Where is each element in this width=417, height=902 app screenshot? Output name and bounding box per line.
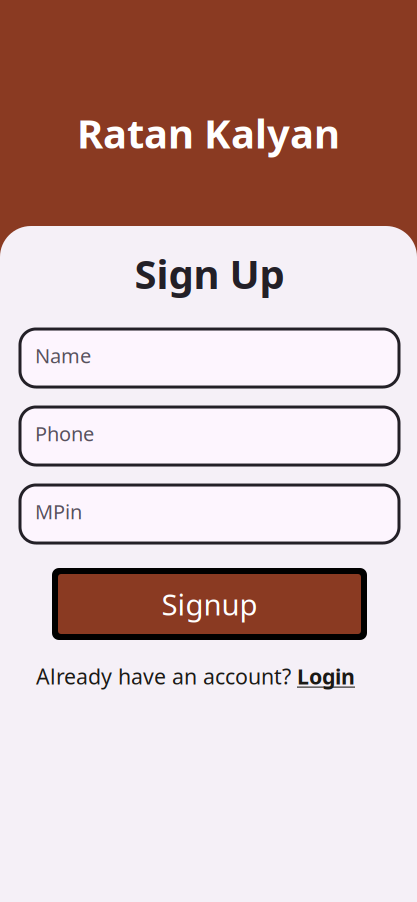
staticText: Sign Up (134, 247, 284, 300)
button[interactable]: Signup (52, 568, 367, 640)
button[interactable]: MPin (20, 485, 399, 543)
staticText: Ratan Kalyan (77, 106, 340, 159)
button[interactable]: Already have an account? Login (36, 662, 355, 690)
staticText: MPin (35, 498, 82, 525)
button[interactable]: Name (20, 329, 399, 387)
staticText: Already have an account? Login (36, 662, 355, 690)
staticText: Signup (161, 584, 257, 623)
staticText: Phone (35, 420, 94, 447)
button[interactable]: Phone (20, 407, 399, 465)
staticText: Name (35, 342, 91, 369)
